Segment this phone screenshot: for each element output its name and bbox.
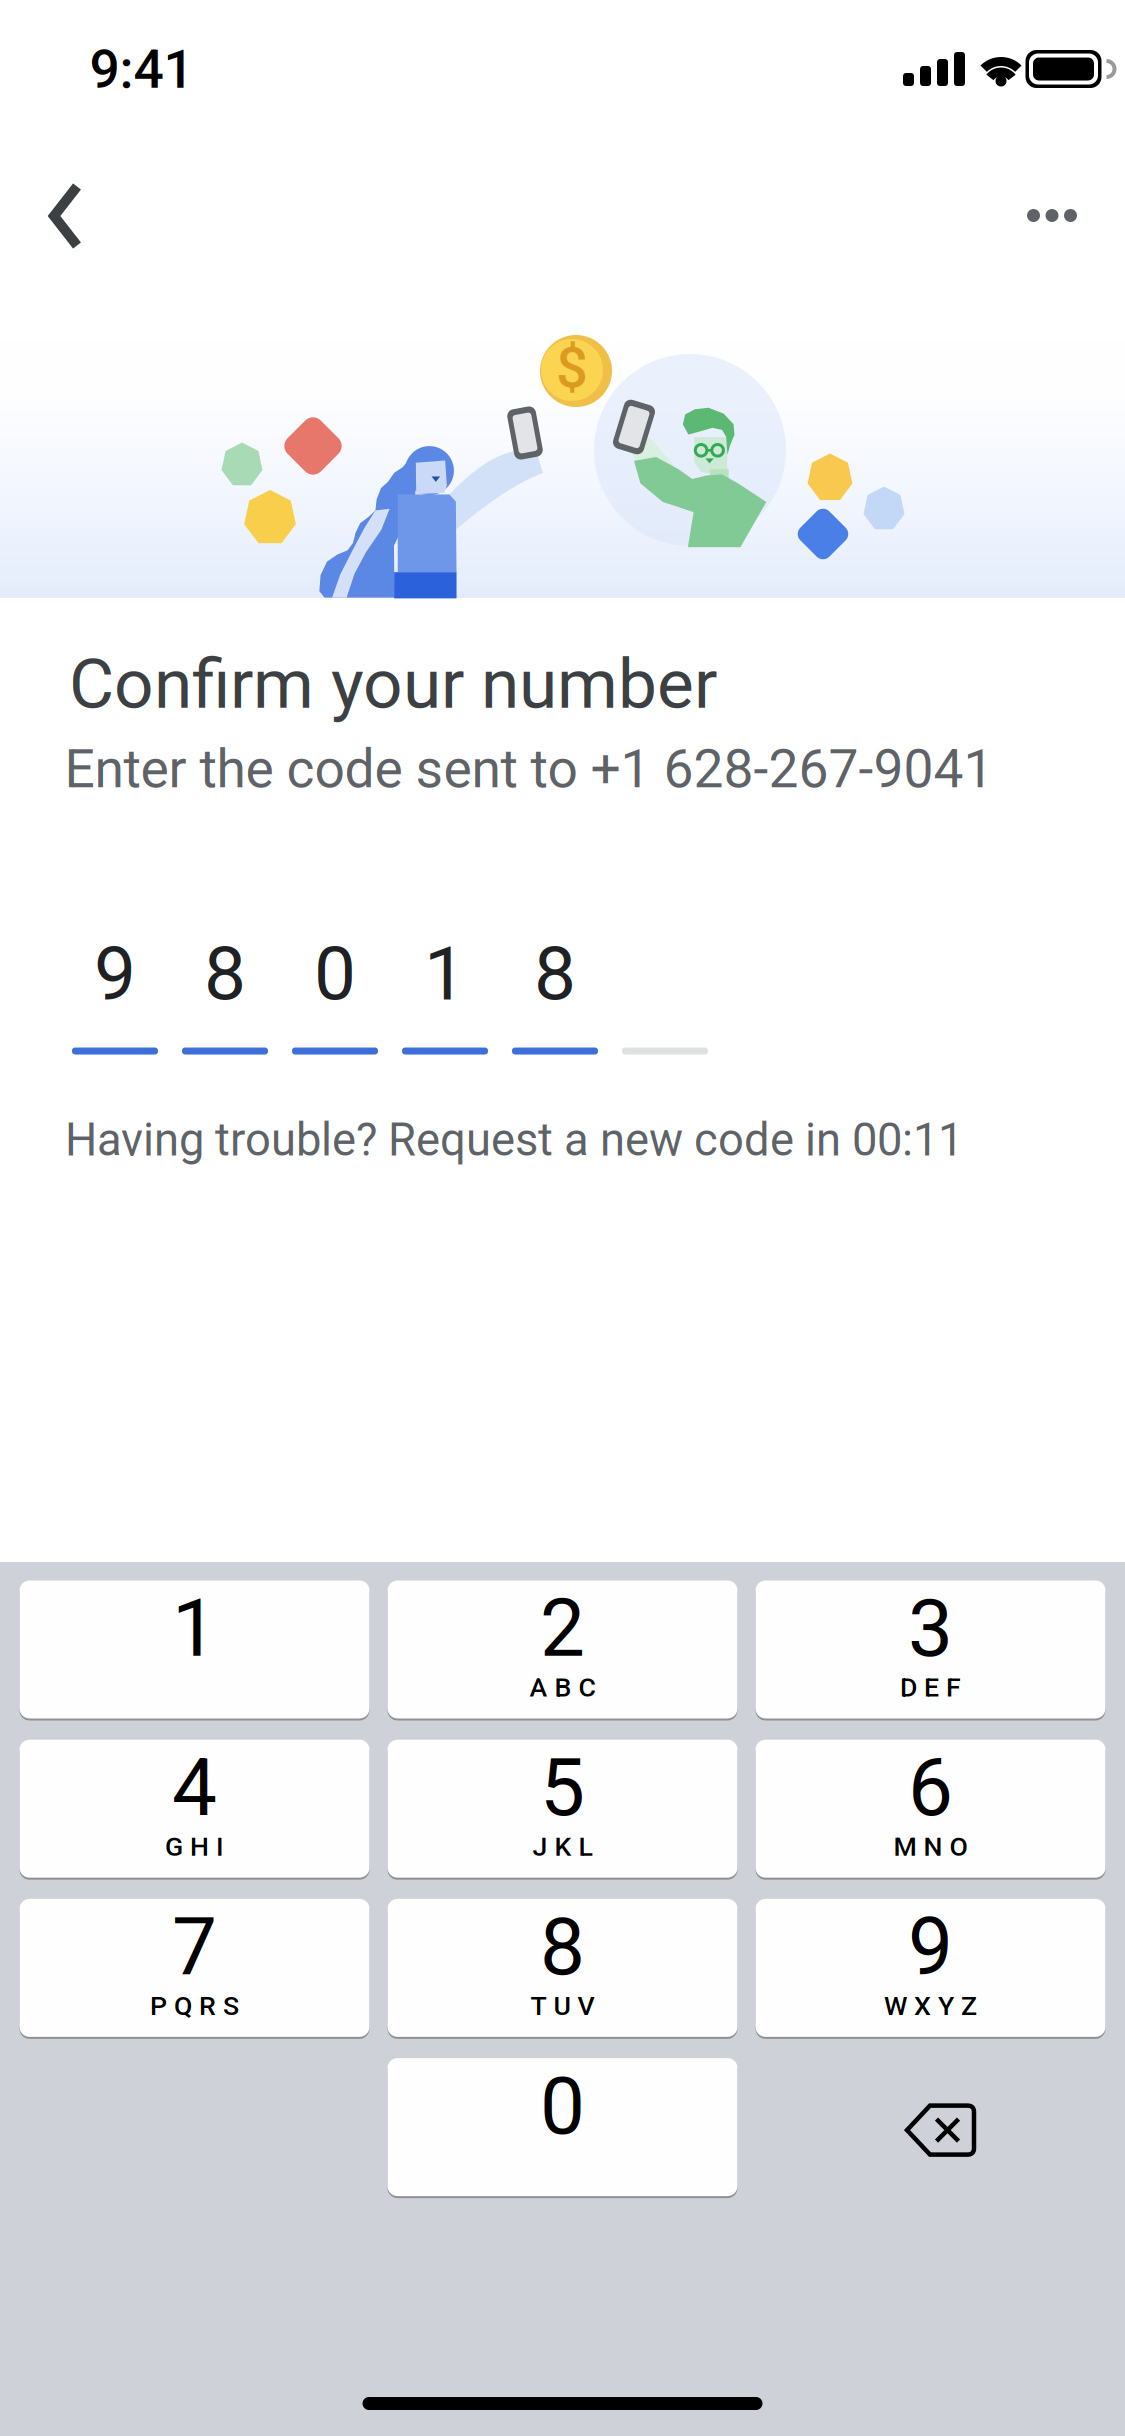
staticText: 3 bbox=[908, 1582, 953, 1675]
staticText: $ bbox=[556, 335, 588, 401]
button[interactable]: Delete bbox=[755, 2058, 1105, 2198]
staticText: 6 bbox=[908, 1741, 953, 1835]
staticText: 9 bbox=[908, 1900, 953, 1994]
staticText: A B C bbox=[529, 1672, 595, 1703]
staticText: W X Y Z bbox=[884, 1990, 977, 2022]
staticText: D E F bbox=[900, 1672, 961, 1703]
staticText: 8 bbox=[540, 1900, 585, 1994]
staticText: 0 bbox=[314, 930, 356, 1018]
button[interactable]: More options bbox=[987, 150, 1117, 280]
button[interactable]: 4 bbox=[19, 1740, 369, 1880]
staticText: 0 bbox=[540, 2059, 585, 2153]
staticText: 1 bbox=[172, 1582, 217, 1675]
staticText: G H I bbox=[165, 1831, 224, 1862]
staticText: 8 bbox=[204, 930, 246, 1018]
staticText: 4 bbox=[172, 1741, 217, 1835]
button[interactable]: Back bbox=[0, 151, 126, 281]
button[interactable]: 9 bbox=[755, 1899, 1105, 2039]
staticText: Confirm your number bbox=[69, 643, 717, 725]
staticText: P Q R S bbox=[150, 1990, 239, 2022]
staticText: 2 bbox=[540, 1582, 585, 1675]
staticText: T U V bbox=[530, 1990, 594, 2022]
staticText: 7 bbox=[172, 1900, 217, 1994]
staticText: 1 bbox=[424, 930, 466, 1018]
button[interactable]: 5 bbox=[387, 1740, 737, 1880]
button[interactable]: 0 bbox=[387, 2058, 737, 2198]
staticText: 5 bbox=[540, 1741, 585, 1835]
button[interactable]: 1 bbox=[19, 1580, 369, 1720]
staticText: Enter the code sent to +1 628-267-9041 bbox=[64, 738, 993, 800]
staticText: M N O bbox=[893, 1831, 967, 1862]
staticText: Having trouble? Request a new code in 00… bbox=[65, 1113, 963, 1166]
button[interactable]: 6 bbox=[755, 1740, 1105, 1880]
staticText: J K L bbox=[532, 1831, 592, 1862]
staticText: 9:41 bbox=[89, 38, 193, 101]
staticText: 9 bbox=[94, 930, 136, 1018]
button[interactable]: 7 bbox=[19, 1899, 369, 2039]
button[interactable]: 2 bbox=[387, 1580, 737, 1720]
staticText: 8 bbox=[534, 930, 576, 1018]
button[interactable]: 8 bbox=[387, 1899, 737, 2039]
button[interactable]: 3 bbox=[755, 1580, 1105, 1720]
